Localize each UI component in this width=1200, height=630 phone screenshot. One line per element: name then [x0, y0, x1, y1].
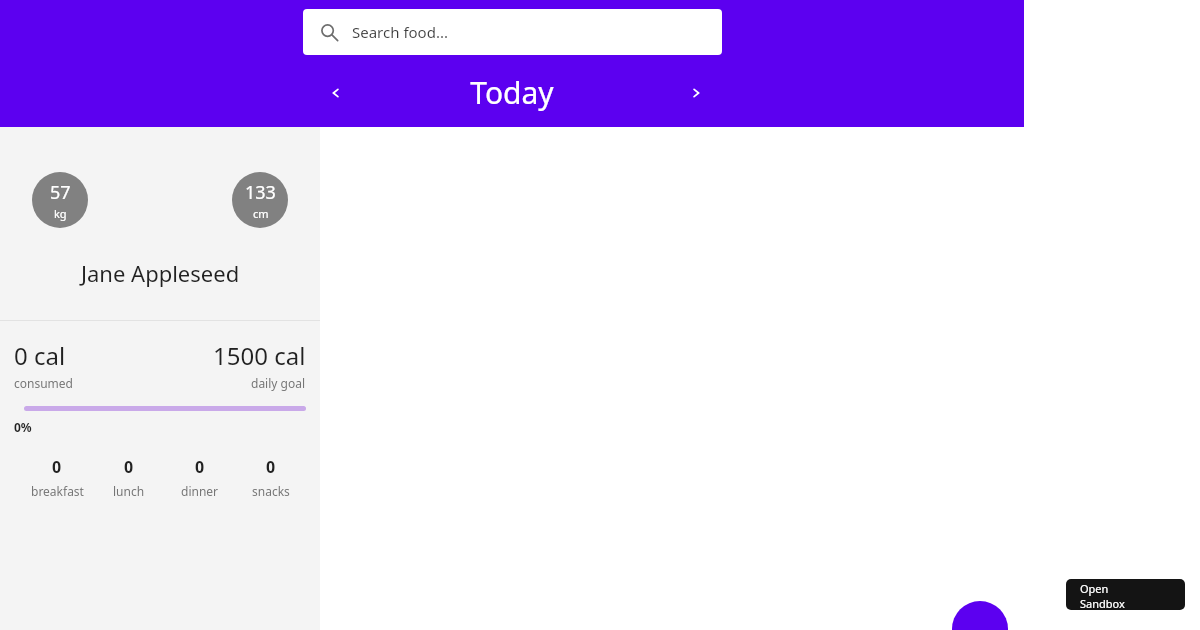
staticText: 0 [195, 456, 205, 478]
button[interactable]: Today [441, 70, 583, 115]
staticText: 0 cal [14, 339, 66, 372]
button[interactable]: Previous day [321, 78, 351, 108]
button[interactable]: Search food [303, 9, 722, 55]
staticText: 0 [266, 456, 276, 478]
staticText: dinner [181, 483, 219, 499]
staticText: Sandbox [1080, 596, 1125, 610]
button[interactable]: Add food [952, 601, 1008, 630]
staticText: snacks [252, 483, 290, 499]
staticText: Today [470, 72, 554, 113]
staticText: 57 [50, 180, 71, 205]
button[interactable]: 0 [164, 456, 235, 499]
staticText: daily goal [251, 375, 306, 391]
staticText: Jane Appleseed [81, 258, 240, 288]
staticText: 0% [14, 419, 32, 435]
staticText: 1500 cal [213, 339, 306, 372]
button[interactable]: 133 [232, 172, 288, 228]
staticText: lunch [113, 483, 145, 499]
staticText: consumed [14, 375, 73, 391]
button[interactable]: 0 [235, 456, 306, 499]
staticText: Open [1080, 581, 1109, 596]
staticText: breakfast [31, 483, 84, 499]
button[interactable]: 0 [93, 456, 164, 499]
button[interactable]: Open [1066, 579, 1185, 610]
staticText: cm [253, 206, 269, 221]
staticText: 0 [52, 456, 62, 478]
staticText: Search food... [352, 22, 448, 42]
staticText: kg [54, 206, 67, 221]
button[interactable]: 0 [21, 456, 93, 499]
button[interactable]: 57 [32, 172, 88, 228]
staticText: 133 [245, 180, 276, 205]
button[interactable]: Next day [681, 78, 711, 108]
staticText: 0 [124, 456, 134, 478]
